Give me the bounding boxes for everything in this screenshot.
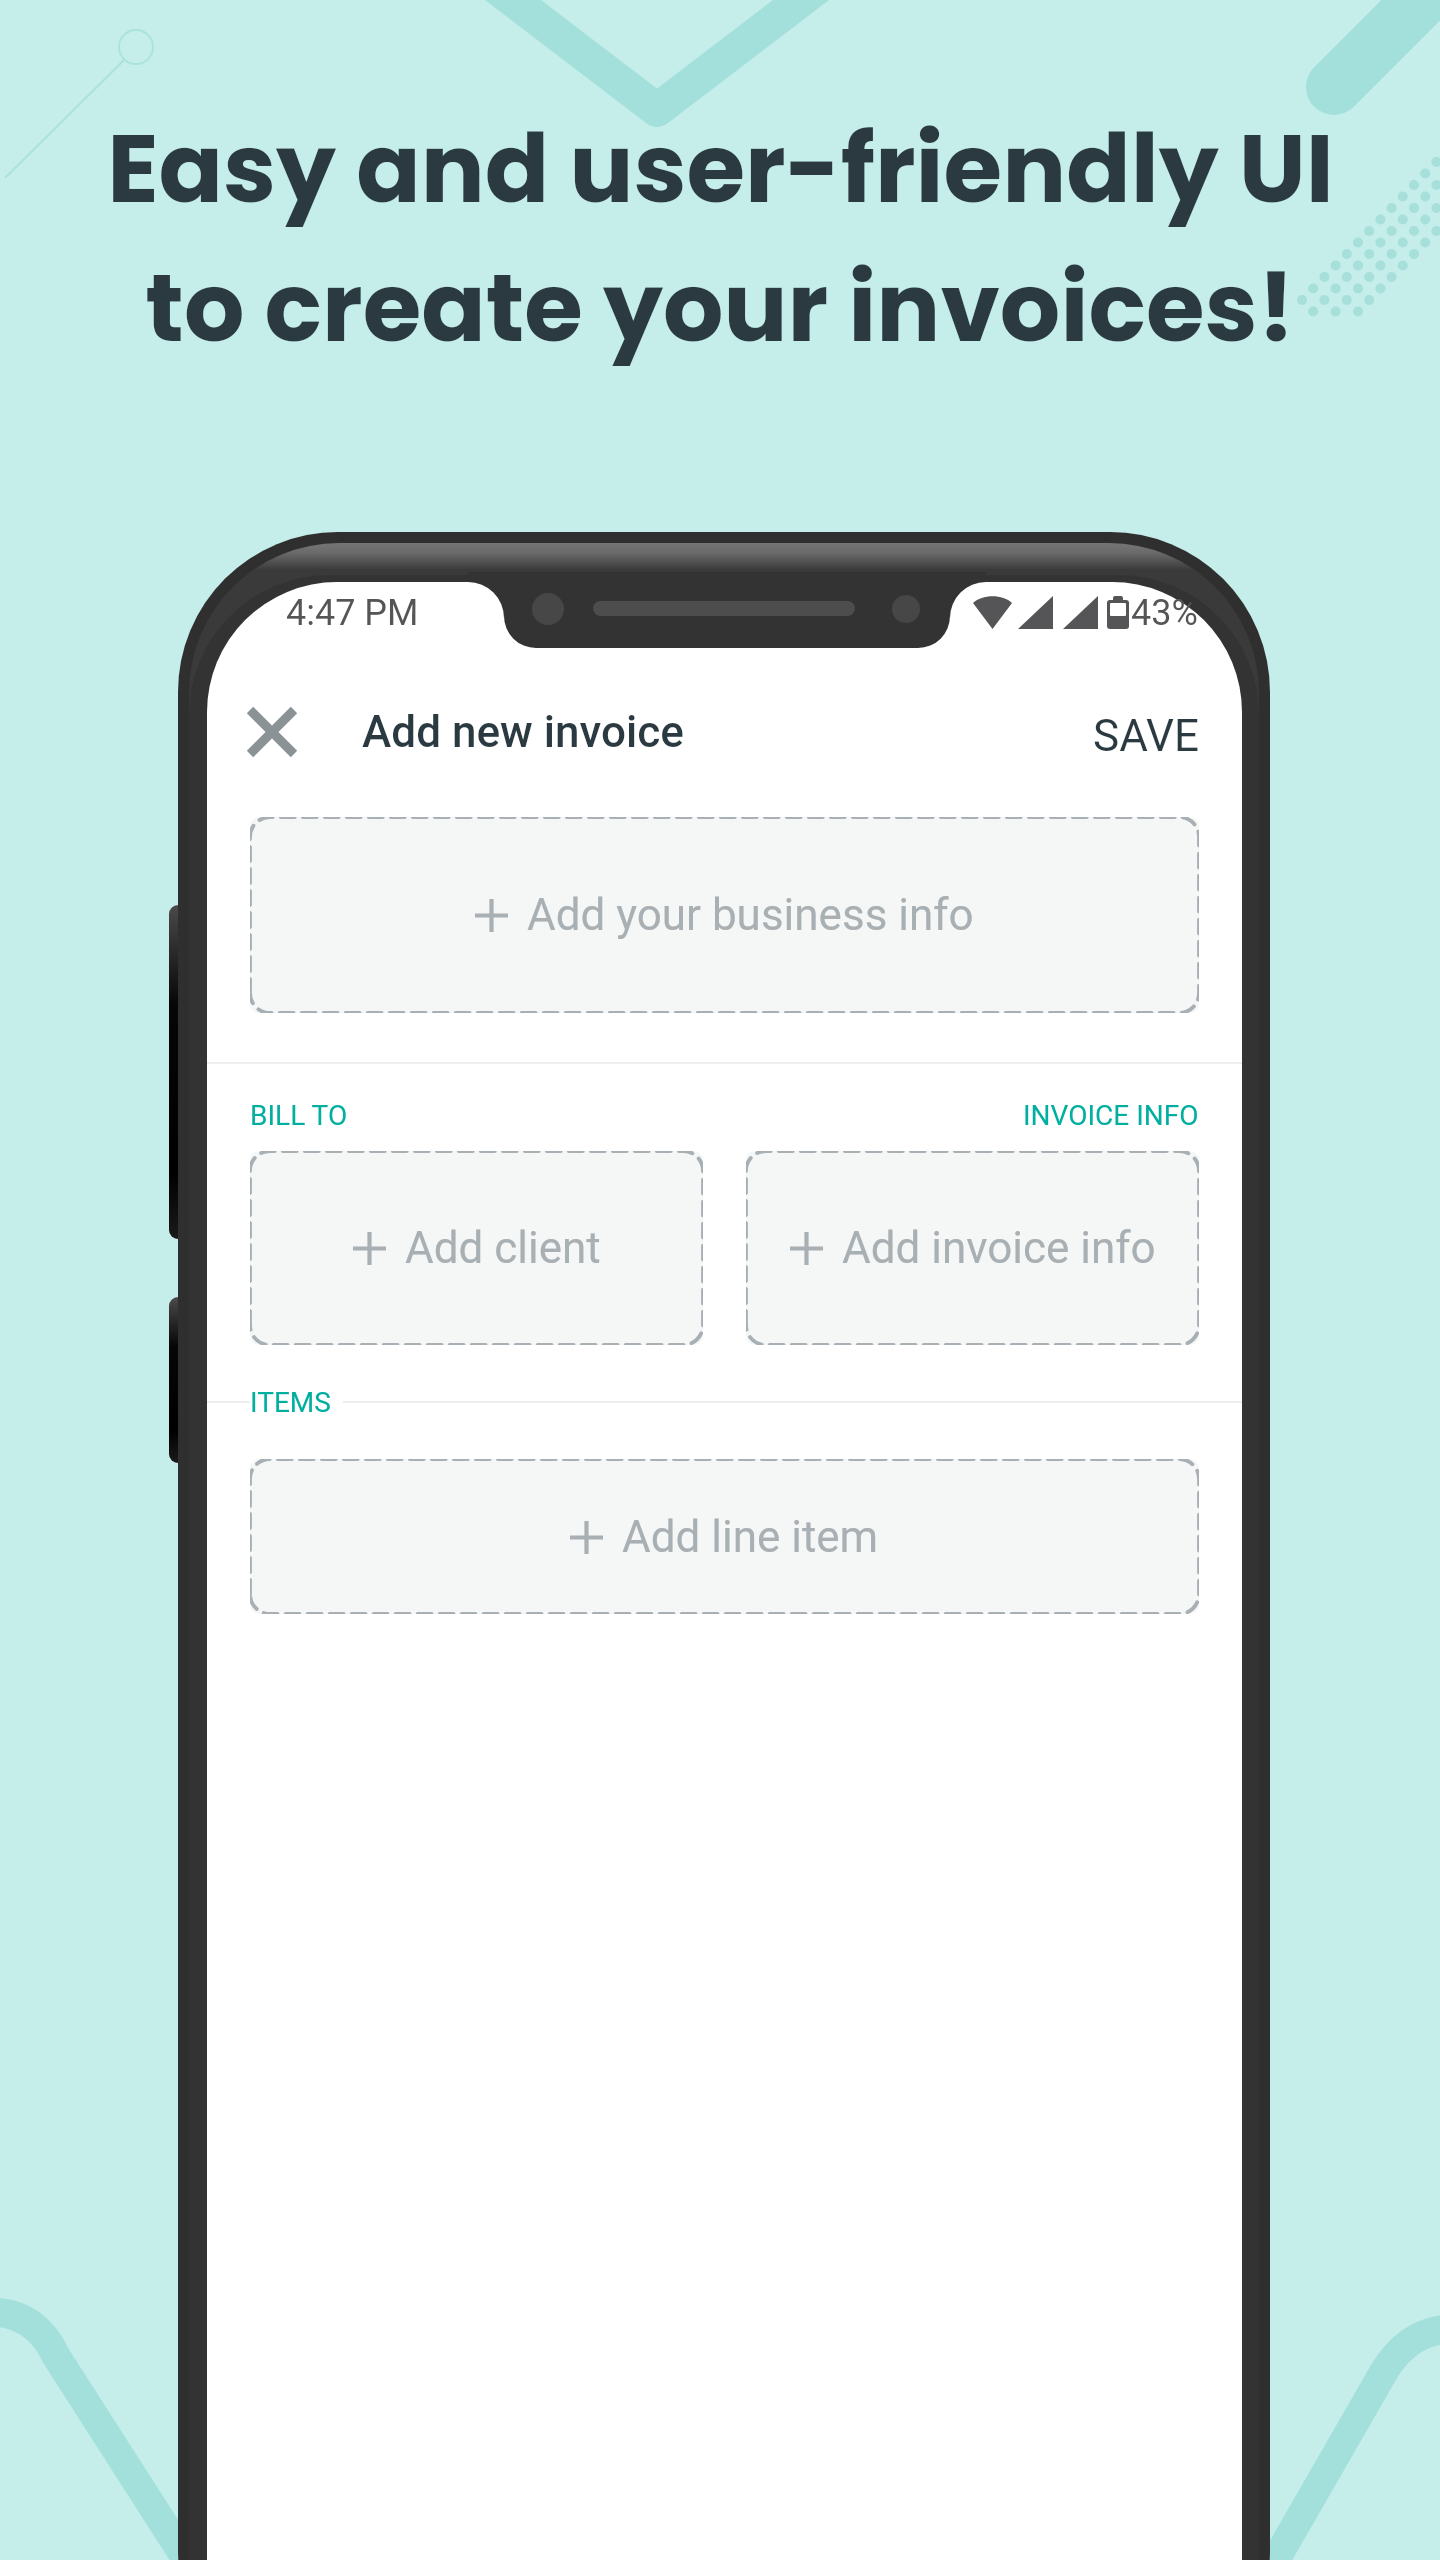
staticText: ITEMS — [250, 1386, 331, 1419]
button[interactable]: Add invoice info — [746, 1151, 1199, 1345]
staticText: to create your invoices! — [145, 241, 1295, 374]
staticText: Add client — [405, 1222, 601, 1274]
staticText: SAVE — [1093, 710, 1199, 762]
staticText: 4:47 PM — [286, 592, 419, 634]
staticText: Add your business info — [527, 889, 974, 941]
button[interactable]: Close — [228, 688, 316, 776]
button[interactable]: Add client — [250, 1151, 703, 1345]
button[interactable]: Add line item — [250, 1459, 1199, 1614]
staticText: 43% — [1131, 592, 1198, 634]
staticText: Easy and user-friendly UI — [107, 102, 1334, 235]
staticText: Add invoice info — [842, 1222, 1156, 1274]
button[interactable]: SAVE — [1053, 690, 1242, 774]
button[interactable]: Add your business info — [250, 817, 1199, 1013]
staticText: Add line item — [622, 1511, 879, 1563]
staticText: INVOICE INFO — [1023, 1099, 1199, 1132]
staticText: Add new invoice — [362, 706, 684, 758]
staticText: BILL TO — [250, 1099, 348, 1132]
